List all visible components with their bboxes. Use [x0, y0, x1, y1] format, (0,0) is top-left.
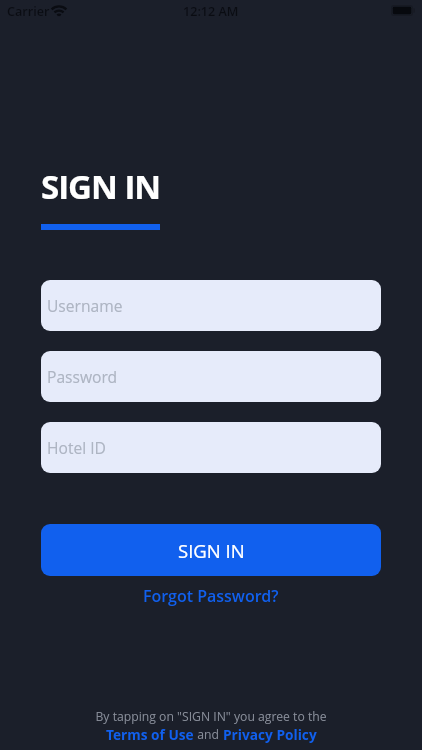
staticText: By tapping on "SIGN IN" you agree to the: [95, 708, 327, 725]
button[interactable]: Password: [41, 351, 381, 402]
staticText: 12:12 AM: [183, 3, 239, 20]
staticText: Username: [47, 295, 123, 316]
other: Wi-Fi: [51, 5, 67, 17]
button[interactable]: Hotel ID: [41, 422, 381, 473]
staticText: Password: [47, 366, 118, 387]
staticText: Carrier: [7, 3, 50, 20]
staticText: Privacy Policy: [223, 725, 317, 744]
staticText: SIGN IN: [41, 164, 161, 209]
button[interactable]: Forgot Password?: [137, 582, 285, 610]
button[interactable]: SIGN IN: [41, 524, 381, 576]
staticText: Terms of Use: [106, 725, 194, 744]
button[interactable]: Username: [41, 280, 381, 331]
other: Battery: [391, 5, 415, 16]
staticText: and: [194, 726, 223, 743]
button[interactable]: Terms of Use: [106, 725, 194, 744]
staticText: SIGN IN: [178, 538, 245, 563]
staticText: Forgot Password?: [143, 585, 279, 607]
staticText: Hotel ID: [47, 437, 106, 458]
button[interactable]: Privacy Policy: [223, 725, 317, 744]
